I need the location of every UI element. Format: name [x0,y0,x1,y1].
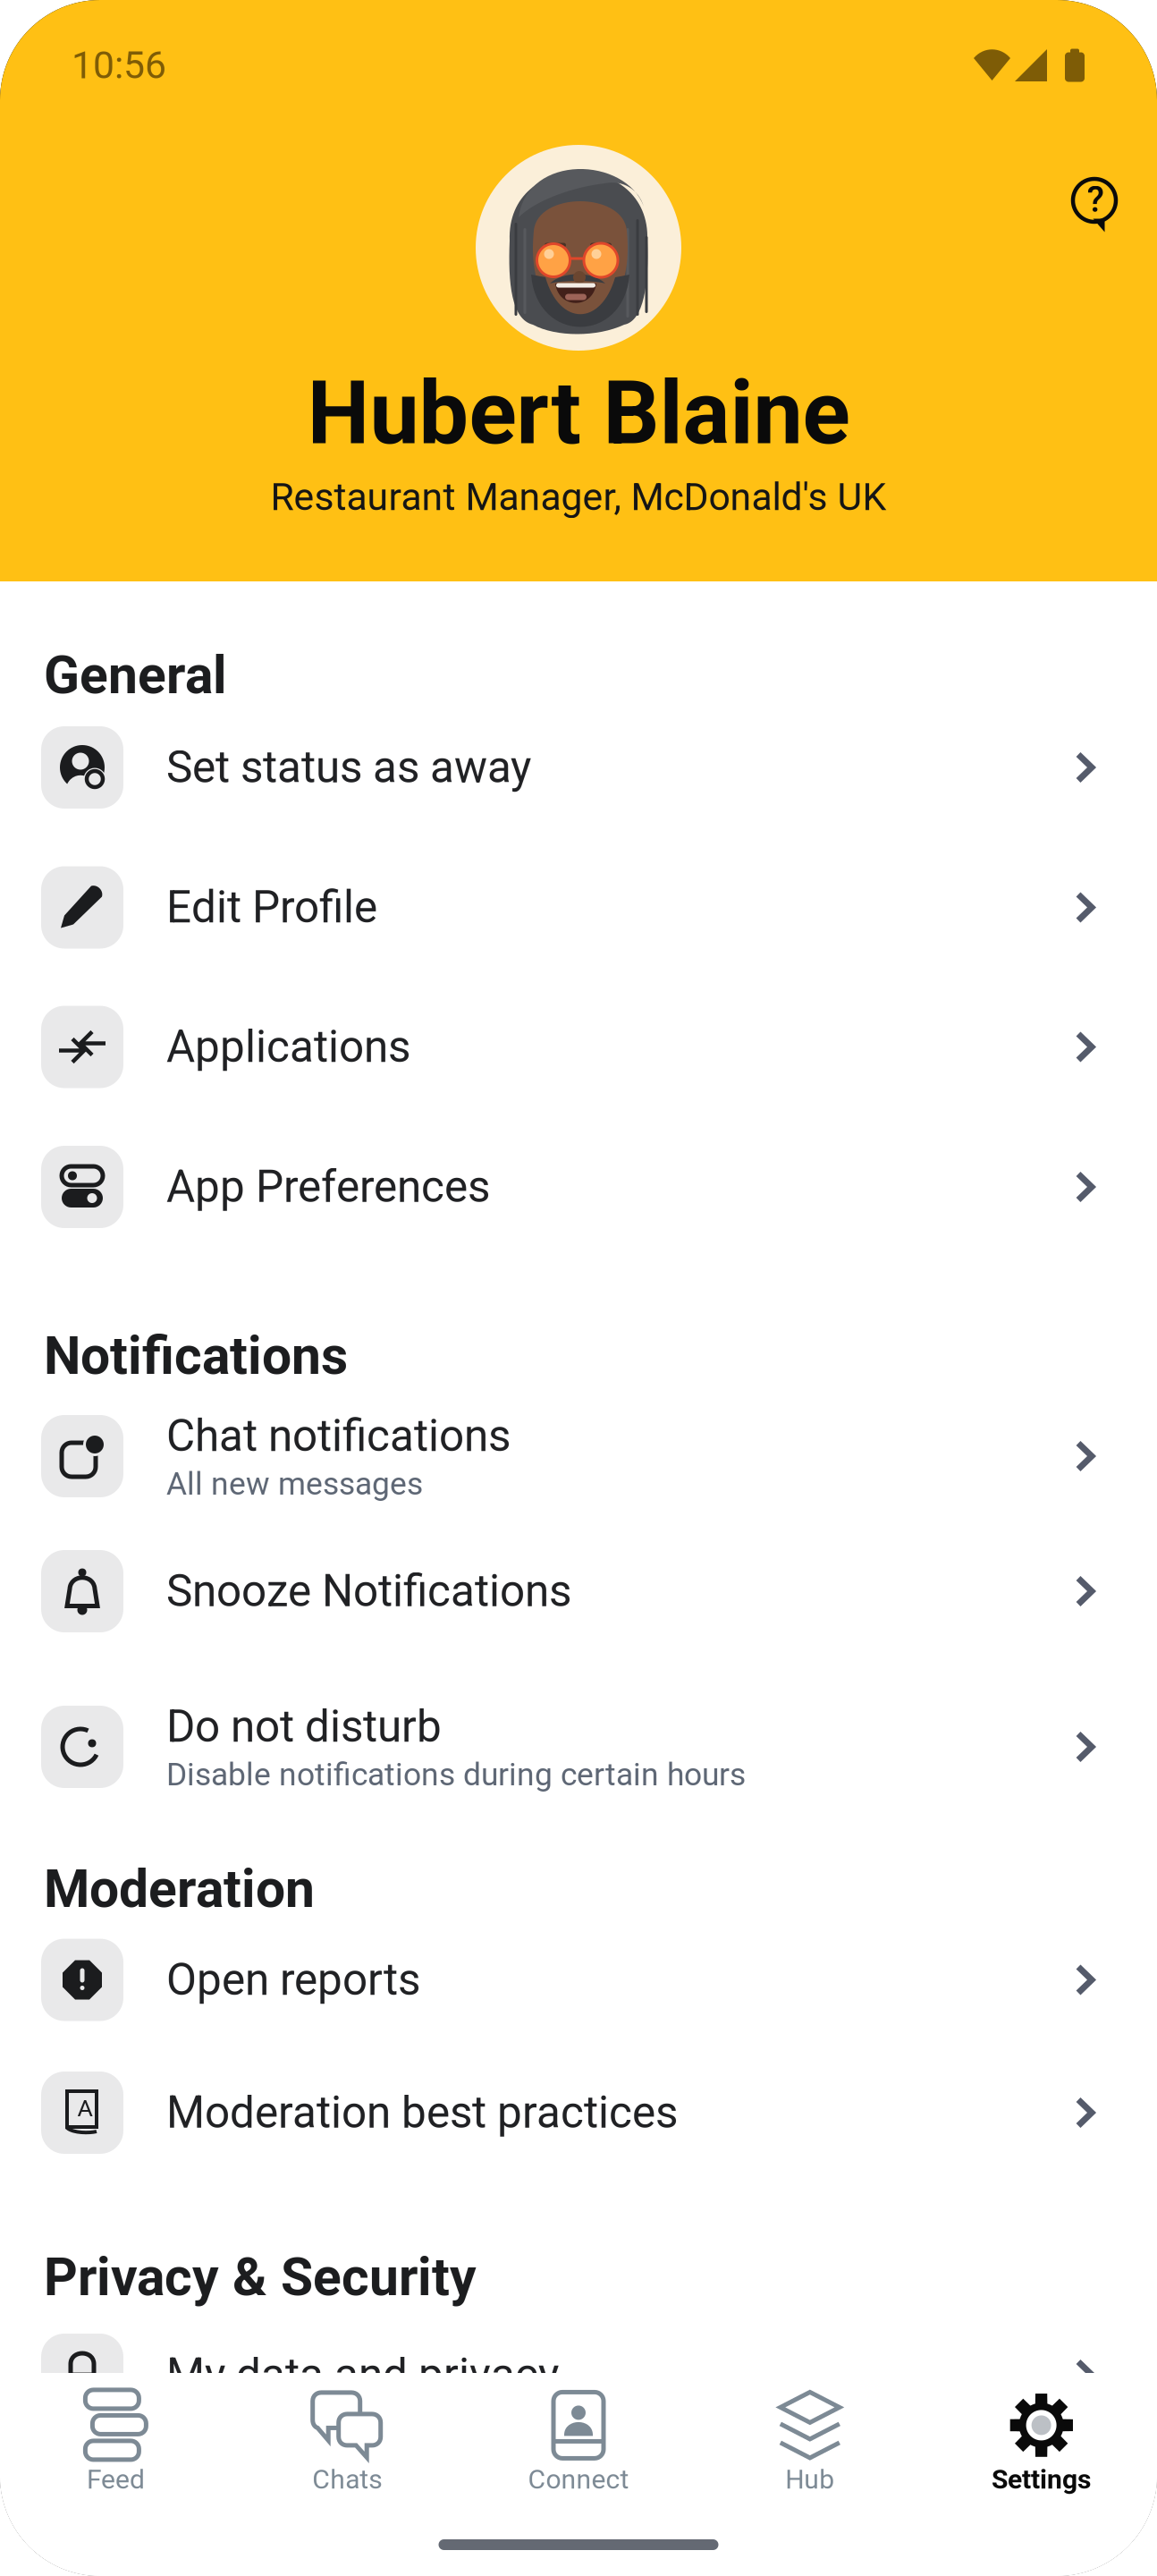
staticText: Applications [166,1021,410,1073]
staticText: Moderation best practices [166,2087,678,2139]
button[interactable]: Connect [463,2390,694,2495]
staticText: App Preferences [166,1161,490,1213]
button[interactable]: Chats [231,2390,463,2495]
button[interactable]: Snooze Notifications [0,1524,1157,1658]
staticText: Restaurant Manager, McDonald's UK [270,475,887,519]
staticText: Do not disturb [166,1701,442,1752]
staticText: Edit Profile [166,882,377,933]
staticText: My data and privacy [166,2349,559,2401]
staticText: Feed [87,2464,145,2495]
staticText: ? [1087,179,1104,220]
button[interactable]: Chat notifications [0,1388,1157,1524]
staticText: Connect [528,2464,629,2495]
button[interactable]: Applications [0,977,1157,1117]
button[interactable]: Set status as away [0,697,1157,838]
staticText: Chats [312,2464,382,2495]
staticText: Settings [992,2464,1091,2495]
button[interactable]: Feed [0,2390,231,2495]
staticText: Open reports [166,1954,420,2006]
staticText: Chat notifications [166,1410,511,1462]
staticText: Privacy & Security [44,2246,477,2308]
button[interactable]: App Preferences [0,1117,1157,1257]
staticText: Moderation [44,1858,315,1920]
staticText: Notifications [44,1325,348,1387]
staticText: General [44,645,227,706]
button[interactable]: A [0,2045,1157,2181]
button[interactable]: Edit Profile [0,838,1157,977]
staticText: Set status as away [166,742,531,793]
staticText: A [77,2094,93,2122]
button[interactable]: Settings [926,2390,1157,2495]
staticText: Snooze Notifications [166,1565,571,1617]
button[interactable]: Hub [694,2390,926,2495]
staticText: Disable notifications during certain hou… [166,1756,746,1793]
button[interactable]: Help [1068,169,1120,232]
button[interactable]: Do not disturb [0,1668,1157,1826]
staticText: Hub [785,2464,834,2495]
button[interactable]: My data and privacy [0,2305,1157,2445]
staticText: 10:56 [72,43,166,88]
button[interactable]: Open reports [0,1915,1157,2045]
staticText: All new messages [166,1465,423,1502]
staticText: Hubert Blaine [307,361,850,465]
